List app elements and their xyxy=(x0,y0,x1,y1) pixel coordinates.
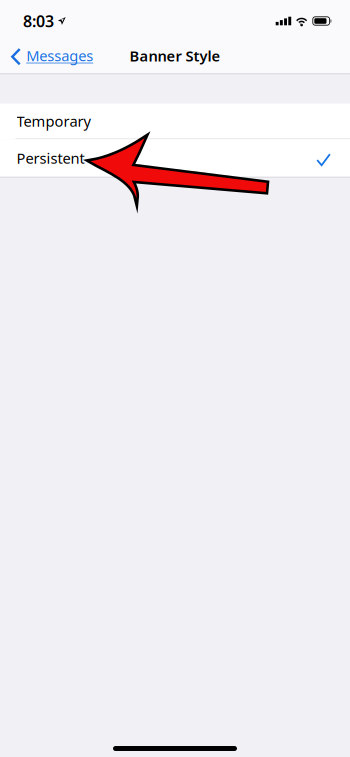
staticText: Persistent xyxy=(16,148,84,168)
button[interactable]: Temporary xyxy=(0,103,350,139)
button[interactable]: Messages xyxy=(0,42,101,73)
staticText: Messages xyxy=(26,46,93,65)
staticText: Banner Style xyxy=(129,46,220,66)
staticText: Temporary xyxy=(16,111,90,131)
button[interactable]: Persistent xyxy=(0,139,350,177)
staticText: 8:03 xyxy=(23,10,54,32)
